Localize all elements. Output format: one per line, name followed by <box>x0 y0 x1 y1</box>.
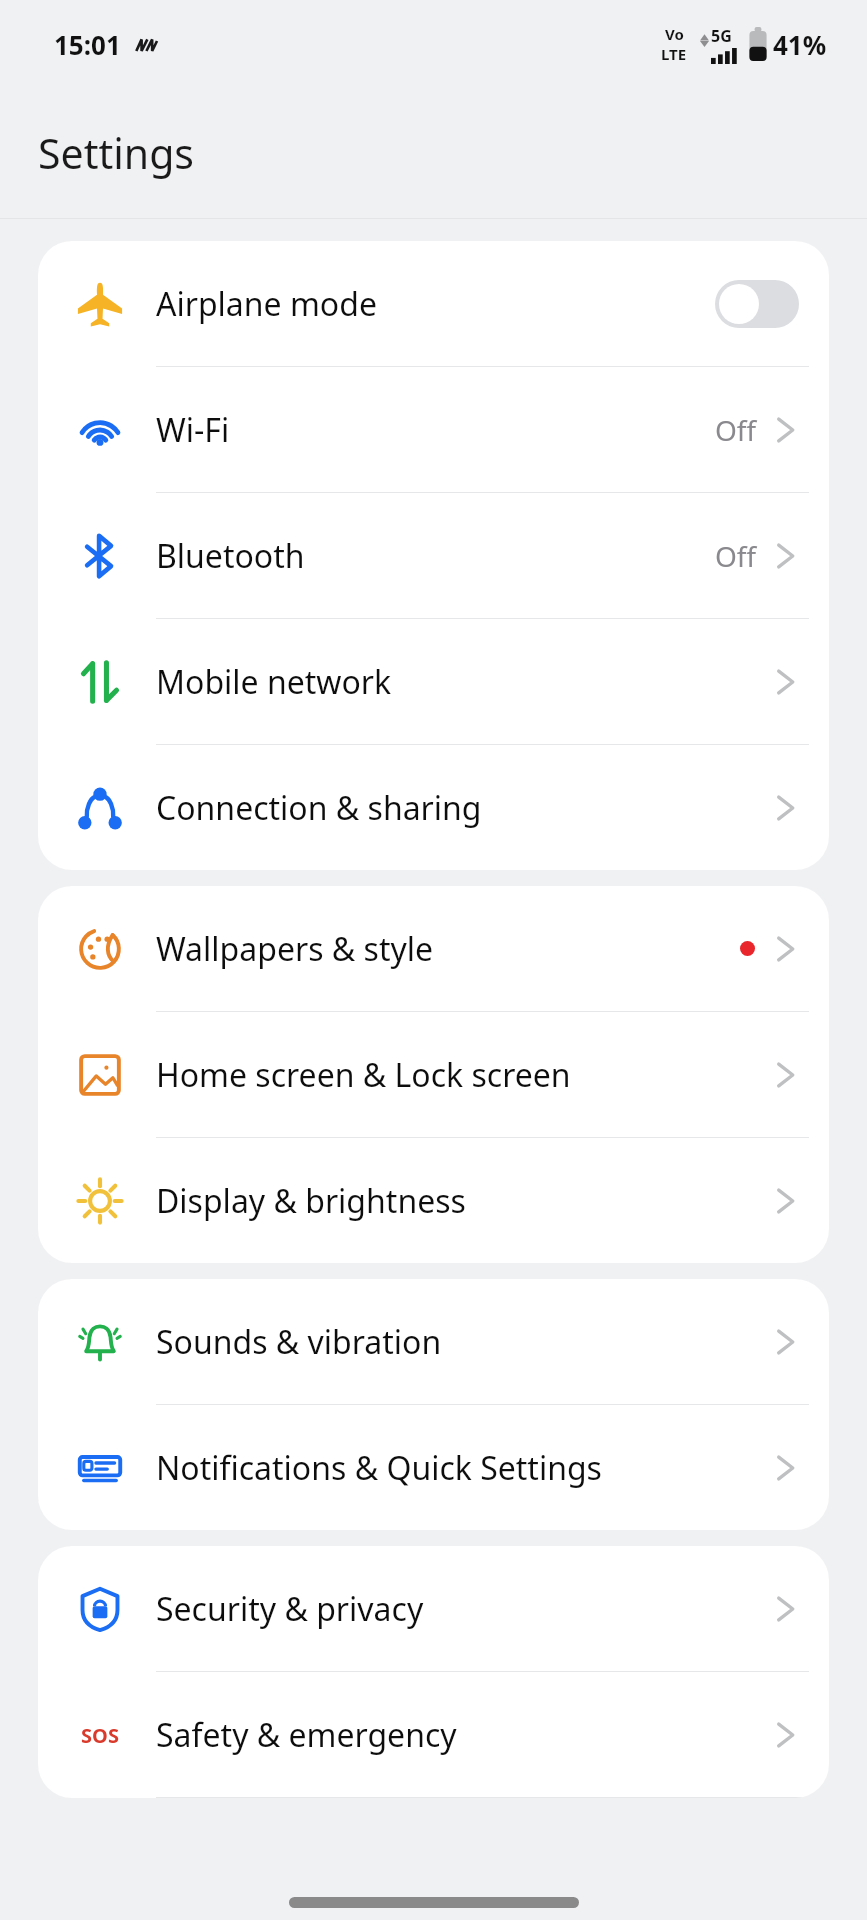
staticText: Mobile network <box>156 660 773 704</box>
staticText: Wallpapers & style <box>156 927 740 971</box>
staticText: Off <box>715 537 757 575</box>
button[interactable]: Wallpapers & style <box>38 886 829 1012</box>
staticText: Display & brightness <box>156 1179 773 1223</box>
staticText: Home screen & Lock screen <box>156 1053 773 1097</box>
button[interactable]: Wi-Fi <box>38 367 829 493</box>
button[interactable]: Display & brightness <box>38 1138 829 1263</box>
button[interactable]: Notifications & Quick Settings <box>38 1405 829 1530</box>
staticText: SOS <box>81 1722 119 1749</box>
staticText: Settings <box>38 125 195 181</box>
button[interactable]: Airplane mode <box>38 241 829 367</box>
staticText: 5G <box>711 25 732 47</box>
button[interactable]: Home screen & Lock screen <box>38 1012 829 1138</box>
staticText: Wi-Fi <box>156 408 715 452</box>
staticText: Connection & sharing <box>156 786 773 830</box>
staticText: Vo <box>665 24 684 44</box>
button[interactable]: Connection & sharing <box>38 745 829 870</box>
staticText: Off <box>715 411 757 449</box>
staticText: 41% <box>773 27 827 62</box>
button[interactable]: Mobile network <box>38 619 829 745</box>
button[interactable]: Airplane mode toggle <box>715 280 799 328</box>
staticText: Security & privacy <box>156 1587 773 1631</box>
button[interactable]: SOS <box>38 1672 829 1798</box>
staticText: LTE <box>661 44 687 64</box>
button[interactable]: Sounds & vibration <box>38 1279 829 1405</box>
button[interactable]: Security & privacy <box>38 1546 829 1672</box>
staticText: Airplane mode <box>156 282 715 326</box>
staticText: Notifications & Quick Settings <box>156 1446 773 1490</box>
staticText: Sounds & vibration <box>156 1320 773 1364</box>
staticText: 15:01 <box>54 27 121 62</box>
button[interactable]: Bluetooth <box>38 493 829 619</box>
staticText: Safety & emergency <box>156 1713 773 1757</box>
staticText: Bluetooth <box>156 534 715 578</box>
